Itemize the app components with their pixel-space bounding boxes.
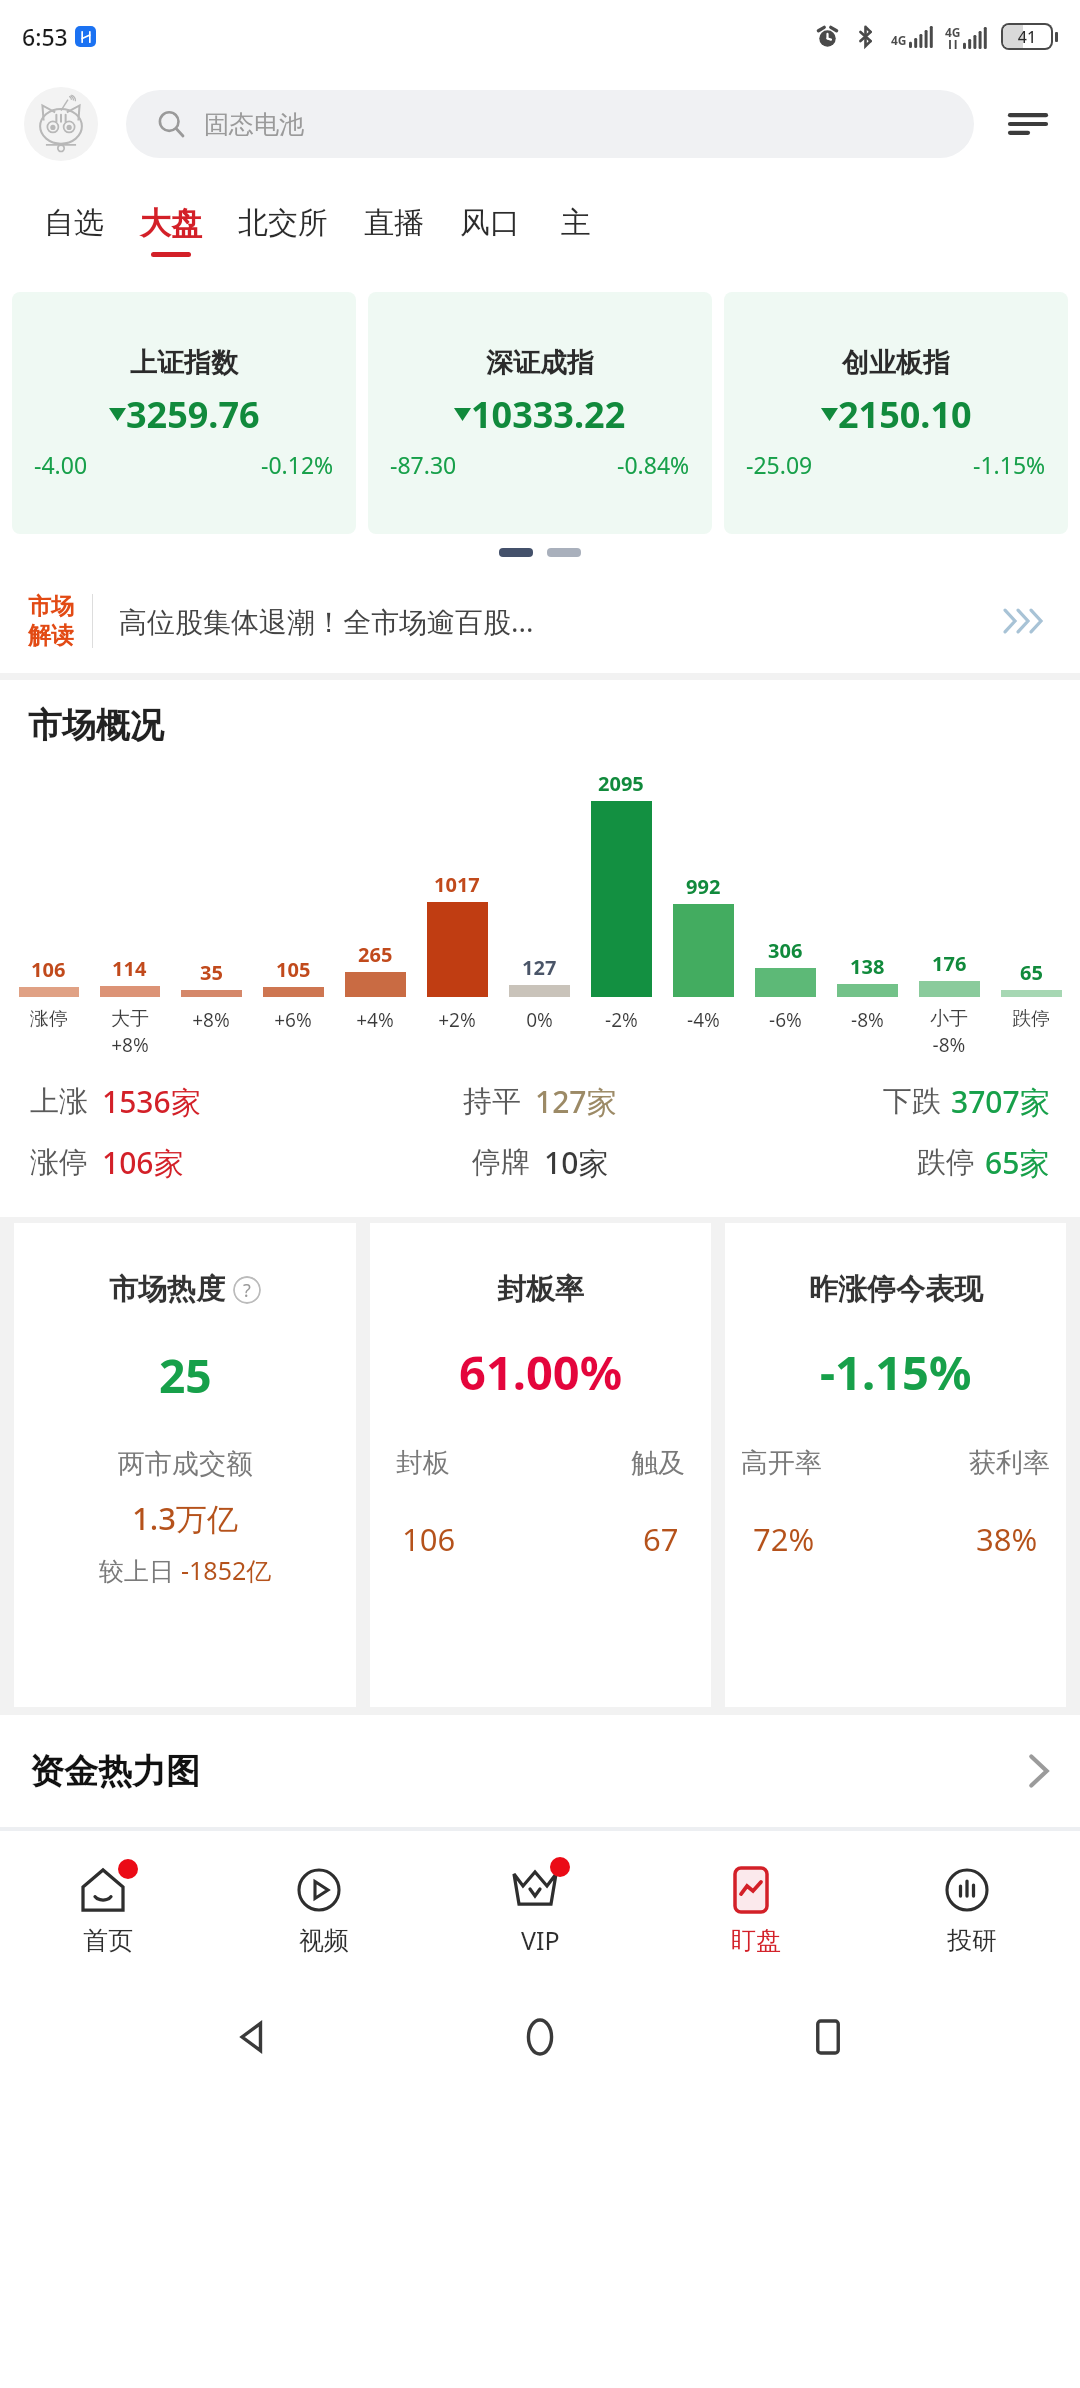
staticText: -1852亿: [181, 1553, 272, 1587]
staticText: 35: [200, 959, 223, 986]
staticText: 106: [402, 1518, 456, 1560]
staticText: -1.15%: [820, 1340, 972, 1404]
staticText: 高位股集体退潮！全市场逾百股...: [119, 602, 992, 640]
staticText: 市场概况: [28, 704, 164, 747]
staticText: 61.00%: [459, 1340, 623, 1404]
staticText: 直播: [364, 204, 424, 242]
button[interactable]: VIP: [432, 1831, 648, 1983]
button[interactable]: 资金热力图: [30, 1715, 1050, 1827]
staticText: 0%: [526, 1007, 553, 1033]
staticText: -6%: [769, 1007, 802, 1033]
button[interactable]: 固态电池: [126, 90, 974, 158]
staticText: 6:53: [22, 21, 68, 52]
button[interactable]: 深证成指: [368, 292, 712, 534]
staticText: -2%: [605, 1007, 638, 1033]
button[interactable]: 市场: [28, 571, 1052, 671]
button[interactable]: 首页: [0, 1831, 216, 1983]
staticText: 138: [850, 953, 885, 980]
button[interactable]: 大盘: [122, 204, 220, 257]
staticText: -25.09: [746, 449, 813, 480]
staticText: 10家: [544, 1142, 609, 1183]
button[interactable]: Menu: [1000, 96, 1056, 152]
button[interactable]: 创业板指: [724, 292, 1068, 534]
staticText: 跌停: [917, 1144, 975, 1181]
staticText: 3259.76: [126, 390, 260, 439]
button[interactable]: 自选: [26, 204, 122, 256]
staticText: 65: [1020, 959, 1043, 986]
staticText: 两市成交额: [118, 1447, 253, 1481]
staticText: 106家: [102, 1142, 184, 1183]
staticText: 41: [1003, 26, 1051, 48]
staticText: 10333.22: [471, 390, 626, 439]
staticText: -1.15%: [973, 449, 1046, 480]
staticText: 解读: [28, 621, 74, 650]
button[interactable]: 直播: [346, 204, 442, 256]
button[interactable]: 市场热度: [14, 1223, 356, 1707]
staticText: -8%: [851, 1007, 884, 1033]
button[interactable]: 上证指数: [12, 292, 356, 534]
staticText: 视频: [299, 1925, 349, 1956]
button[interactable]: Home: [505, 2002, 575, 2072]
staticText: +6%: [274, 1007, 312, 1033]
staticText: 4G: [891, 32, 907, 48]
staticText: 3707家: [951, 1081, 1050, 1122]
staticText: 小于 -8%: [930, 1007, 968, 1058]
button[interactable]: Back: [218, 2002, 288, 2072]
staticText: 265: [358, 941, 393, 968]
staticText: 停牌: [472, 1144, 530, 1181]
button[interactable]: 北交所: [220, 204, 346, 256]
staticText: 市场: [28, 592, 74, 621]
button[interactable]: 盯盘: [648, 1831, 864, 1983]
staticText: 持平: [463, 1083, 521, 1120]
button[interactable]: 视频: [216, 1831, 432, 1983]
staticText: 大盘: [140, 204, 202, 243]
staticText: 涨停: [30, 1007, 68, 1031]
staticText: 跌停: [1012, 1007, 1050, 1031]
staticText: 封板: [396, 1446, 450, 1480]
button[interactable]: 封板率: [370, 1223, 711, 1707]
staticText: 38%: [976, 1518, 1038, 1560]
staticText: ?: [243, 1278, 251, 1303]
staticText: +2%: [438, 1007, 476, 1033]
button[interactable]: 风口: [442, 204, 538, 256]
staticText: 大于 +8%: [111, 1007, 149, 1058]
button[interactable]: Profile: [24, 87, 98, 161]
staticText: 盯盘: [731, 1925, 781, 1956]
button[interactable]: 投研: [864, 1831, 1080, 1983]
staticText: 上涨: [30, 1083, 88, 1120]
staticText: -0.84%: [617, 449, 690, 480]
staticText: 获利率: [969, 1446, 1050, 1480]
staticText: 1017: [434, 871, 480, 898]
staticText: 资金热力图: [30, 1750, 200, 1793]
staticText: -87.30: [390, 449, 457, 480]
staticText: VIP: [521, 1923, 560, 1957]
staticText: -4%: [687, 1007, 720, 1033]
staticText: 72%: [753, 1518, 815, 1560]
staticText: 127家: [535, 1081, 617, 1122]
staticText: 投研: [947, 1925, 997, 1956]
staticText: +4%: [356, 1007, 394, 1033]
staticText: 105: [276, 956, 311, 983]
staticText: 176: [932, 950, 967, 977]
staticText: 2095: [598, 770, 644, 797]
staticText: 深证成指: [486, 346, 594, 380]
staticText: 65家: [985, 1142, 1050, 1183]
staticText: 106: [31, 956, 66, 983]
staticText: 首页: [83, 1925, 133, 1956]
staticText: 较上日: [99, 1553, 181, 1587]
staticText: -4.00: [34, 449, 88, 480]
staticText: 北交所: [238, 204, 328, 242]
staticText: 2150.10: [838, 390, 972, 439]
staticText: +8%: [192, 1007, 230, 1033]
button[interactable]: 昨涨停今表现: [725, 1223, 1066, 1707]
button[interactable]: Recents: [793, 2002, 863, 2072]
staticText: 1536家: [102, 1081, 201, 1122]
button[interactable]: 主: [538, 204, 614, 256]
staticText: 风口: [460, 204, 520, 242]
staticText: 4G: [945, 24, 961, 40]
staticText: 114: [112, 955, 147, 982]
staticText: 下跌: [883, 1083, 941, 1120]
staticText: 市场热度: [109, 1271, 225, 1308]
staticText: 涨停: [30, 1144, 88, 1181]
staticText: 主: [561, 204, 591, 242]
